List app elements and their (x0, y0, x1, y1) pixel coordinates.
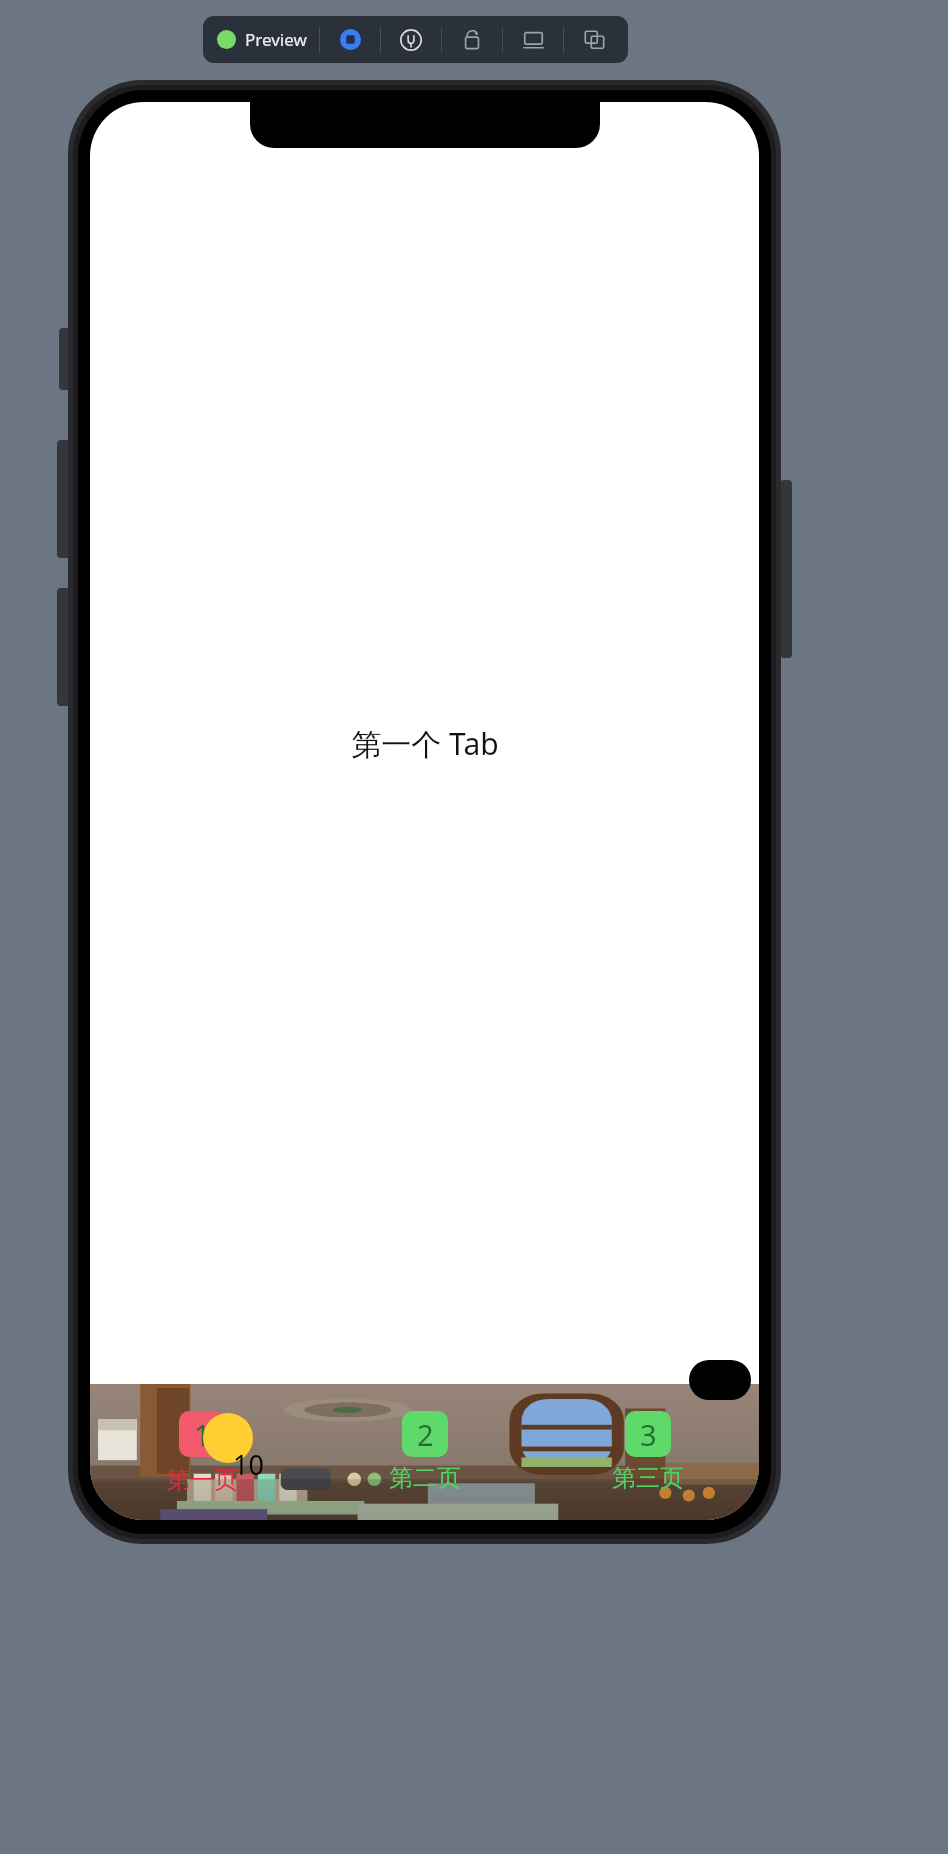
staticText: 2 (417, 1415, 434, 1454)
button[interactable]: Menu (689, 1360, 751, 1400)
staticText: 第一个 Tab (351, 723, 499, 764)
button[interactable]: New window (564, 16, 624, 63)
button[interactable]: 3 (536, 1384, 759, 1520)
staticText: 1 (194, 1415, 211, 1454)
button[interactable]: 1 (90, 1384, 313, 1520)
button[interactable]: Inspect (381, 16, 441, 63)
button[interactable]: Rerun (442, 16, 502, 63)
staticText: 10 (233, 1446, 264, 1483)
staticText: 3 (640, 1415, 657, 1454)
staticText: Preview (245, 28, 307, 51)
staticText: 第二页 (389, 1463, 461, 1493)
staticText: 第三页 (612, 1463, 684, 1493)
button[interactable]: 2 (313, 1384, 536, 1520)
staticText: 第一页 (166, 1465, 238, 1495)
button[interactable]: Open on desktop (503, 16, 563, 63)
button[interactable]: Stop (320, 16, 380, 63)
button[interactable]: Preview (203, 28, 319, 51)
staticText: 22 (694, 1356, 725, 1393)
